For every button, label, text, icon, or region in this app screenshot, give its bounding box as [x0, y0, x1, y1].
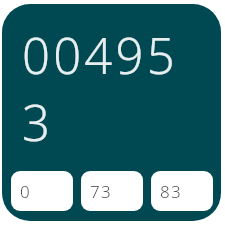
staticText: 0 — [20, 180, 31, 203]
staticText: 004953 — [22, 22, 207, 156]
button[interactable]: 83 — [151, 171, 213, 211]
staticText: 73 — [90, 180, 112, 203]
button[interactable]: 0 — [11, 171, 73, 211]
button[interactable]: 004953 — [2, 4, 221, 221]
button[interactable]: 73 — [81, 171, 143, 211]
staticText: 83 — [160, 180, 182, 203]
